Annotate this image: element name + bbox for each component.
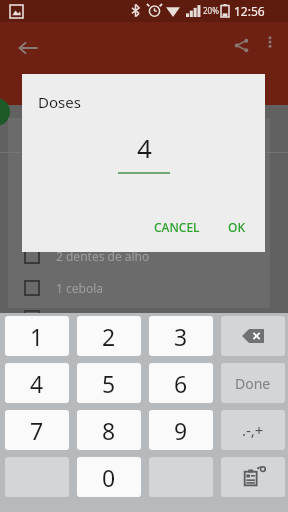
staticText: 1 folha de louro bbox=[56, 310, 145, 326]
button[interactable]: Back bbox=[8, 28, 48, 68]
button[interactable]: 1 cebola bbox=[24, 275, 254, 301]
button[interactable]: More options bbox=[256, 28, 284, 56]
button[interactable]: Backspace bbox=[221, 316, 285, 356]
button[interactable]: 1 bbox=[5, 316, 69, 356]
button[interactable]: 7 bbox=[5, 410, 69, 450]
staticText: 0 bbox=[102, 462, 116, 493]
button[interactable]: 9 bbox=[149, 410, 213, 450]
staticText: 12:56 bbox=[234, 3, 265, 19]
button[interactable]: Symbols bbox=[221, 410, 285, 450]
button[interactable]: 1 folha de louro bbox=[24, 305, 254, 331]
staticText: 4 bbox=[137, 130, 152, 165]
staticText: 6 bbox=[174, 368, 188, 399]
staticText: 1 cebola bbox=[56, 280, 103, 296]
button[interactable]: Add bbox=[0, 98, 10, 126]
staticText: 4 bbox=[30, 368, 44, 399]
button[interactable]: 6 bbox=[149, 363, 213, 403]
button[interactable]: OK bbox=[218, 212, 255, 242]
button[interactable]: Clipboard settings bbox=[221, 457, 285, 497]
button[interactable]: 3 bbox=[149, 316, 213, 356]
button[interactable]: CANCEL bbox=[144, 212, 210, 242]
staticText: Done bbox=[235, 374, 271, 393]
button[interactable]: Share bbox=[224, 28, 258, 62]
staticText: 3 bbox=[174, 321, 188, 352]
staticText: .-,+ bbox=[242, 420, 264, 440]
staticText: 8 bbox=[102, 415, 116, 446]
button[interactable]: 0 bbox=[77, 457, 141, 497]
button[interactable]: 5 bbox=[77, 363, 141, 403]
button[interactable]: Done bbox=[221, 363, 285, 403]
staticText: 7 bbox=[30, 415, 44, 446]
staticText: 20% bbox=[203, 5, 219, 16]
staticText: CANCEL bbox=[154, 219, 200, 235]
button[interactable]: 8 bbox=[77, 410, 141, 450]
staticText: 9 bbox=[174, 415, 188, 446]
staticText: 2 dentes de alho bbox=[56, 248, 150, 264]
staticText: 1 bbox=[30, 321, 44, 352]
button[interactable]: 2 bbox=[77, 316, 141, 356]
staticText: 2 bbox=[102, 321, 116, 352]
button[interactable]: 2 dentes de alho bbox=[24, 243, 254, 269]
staticText: 5 bbox=[102, 368, 116, 399]
staticText: Doses bbox=[38, 92, 81, 112]
staticText: OK bbox=[228, 219, 245, 235]
button[interactable]: 4 bbox=[5, 363, 69, 403]
